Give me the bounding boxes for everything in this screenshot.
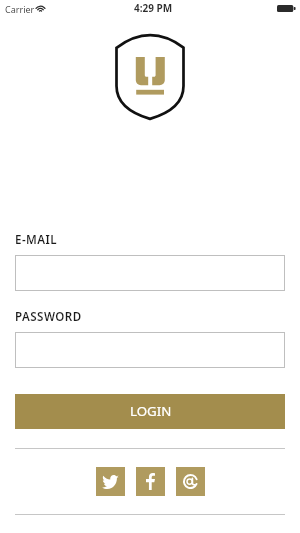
- button[interactable]: Sign in with Twitter: [96, 467, 125, 496]
- staticText: LOGIN: [130, 402, 172, 420]
- button[interactable]: LOGIN: [15, 394, 285, 429]
- button[interactable]: E-mail address field: [15, 255, 285, 291]
- button[interactable]: Sign in with email: [176, 467, 205, 496]
- staticText: E-MAIL: [15, 232, 58, 248]
- staticText: PASSWORD: [15, 309, 82, 325]
- staticText: Carrier: [5, 3, 35, 15]
- button[interactable]: Sign in with Facebook: [136, 467, 165, 496]
- button[interactable]: Password field: [15, 332, 285, 368]
- staticText: 4:29 PM: [134, 1, 173, 15]
